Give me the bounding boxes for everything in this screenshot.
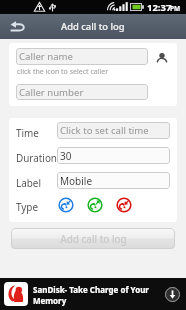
staticText: SanDisk- Take Charge of Your xyxy=(33,284,149,295)
staticText: Add call to log xyxy=(60,232,127,246)
button[interactable]: SanDisk- Take Charge of Your xyxy=(0,278,186,310)
button[interactable]: Add call to log xyxy=(11,228,175,249)
staticText: Caller number xyxy=(19,86,84,99)
button[interactable]: Caller number xyxy=(16,84,148,100)
staticText: Memory xyxy=(33,295,67,306)
button[interactable]: Incoming call xyxy=(56,195,76,215)
staticText: 30 xyxy=(60,149,72,163)
staticText: Mobile xyxy=(60,174,93,188)
staticText: click the icon to select caller xyxy=(17,67,109,77)
staticText: Caller name xyxy=(19,50,73,63)
staticText: Duration xyxy=(16,151,57,164)
button[interactable]: Download xyxy=(164,286,181,303)
button[interactable]: Back xyxy=(0,14,34,39)
staticText: Time xyxy=(16,126,39,139)
staticText: 12:37 xyxy=(147,1,172,14)
button[interactable]: Outgoing call xyxy=(85,195,105,215)
button[interactable]: Select caller xyxy=(152,46,172,66)
button[interactable]: Mobile xyxy=(57,172,170,189)
button[interactable]: Missed call xyxy=(114,195,134,215)
button[interactable]: 30 xyxy=(57,147,170,164)
staticText: Label xyxy=(16,176,41,189)
button[interactable]: Caller name xyxy=(16,48,148,65)
staticText: Type xyxy=(16,200,39,213)
staticText: Click to set call time xyxy=(60,124,149,137)
staticText: Add call to log xyxy=(61,20,125,33)
staticText: PM xyxy=(170,4,181,13)
button[interactable]: Click to set call time xyxy=(57,122,170,139)
